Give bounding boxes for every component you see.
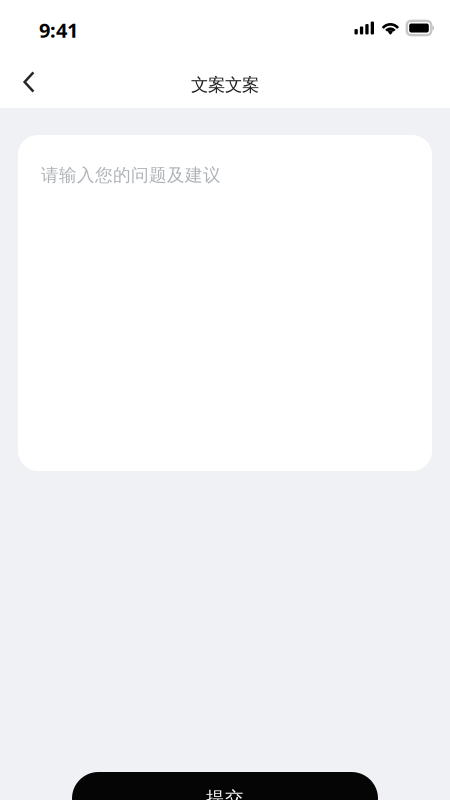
button[interactable]: 提交 — [72, 772, 378, 800]
staticText: 9:41 — [39, 16, 78, 44]
staticText: 请输入您的问题及建议 — [41, 164, 221, 186]
button[interactable]: 请输入您的问题及建议 — [18, 135, 432, 471]
staticText: 文案文案 — [191, 74, 259, 96]
staticText: 提交 — [206, 787, 244, 800]
button[interactable]: Back — [6, 60, 52, 104]
